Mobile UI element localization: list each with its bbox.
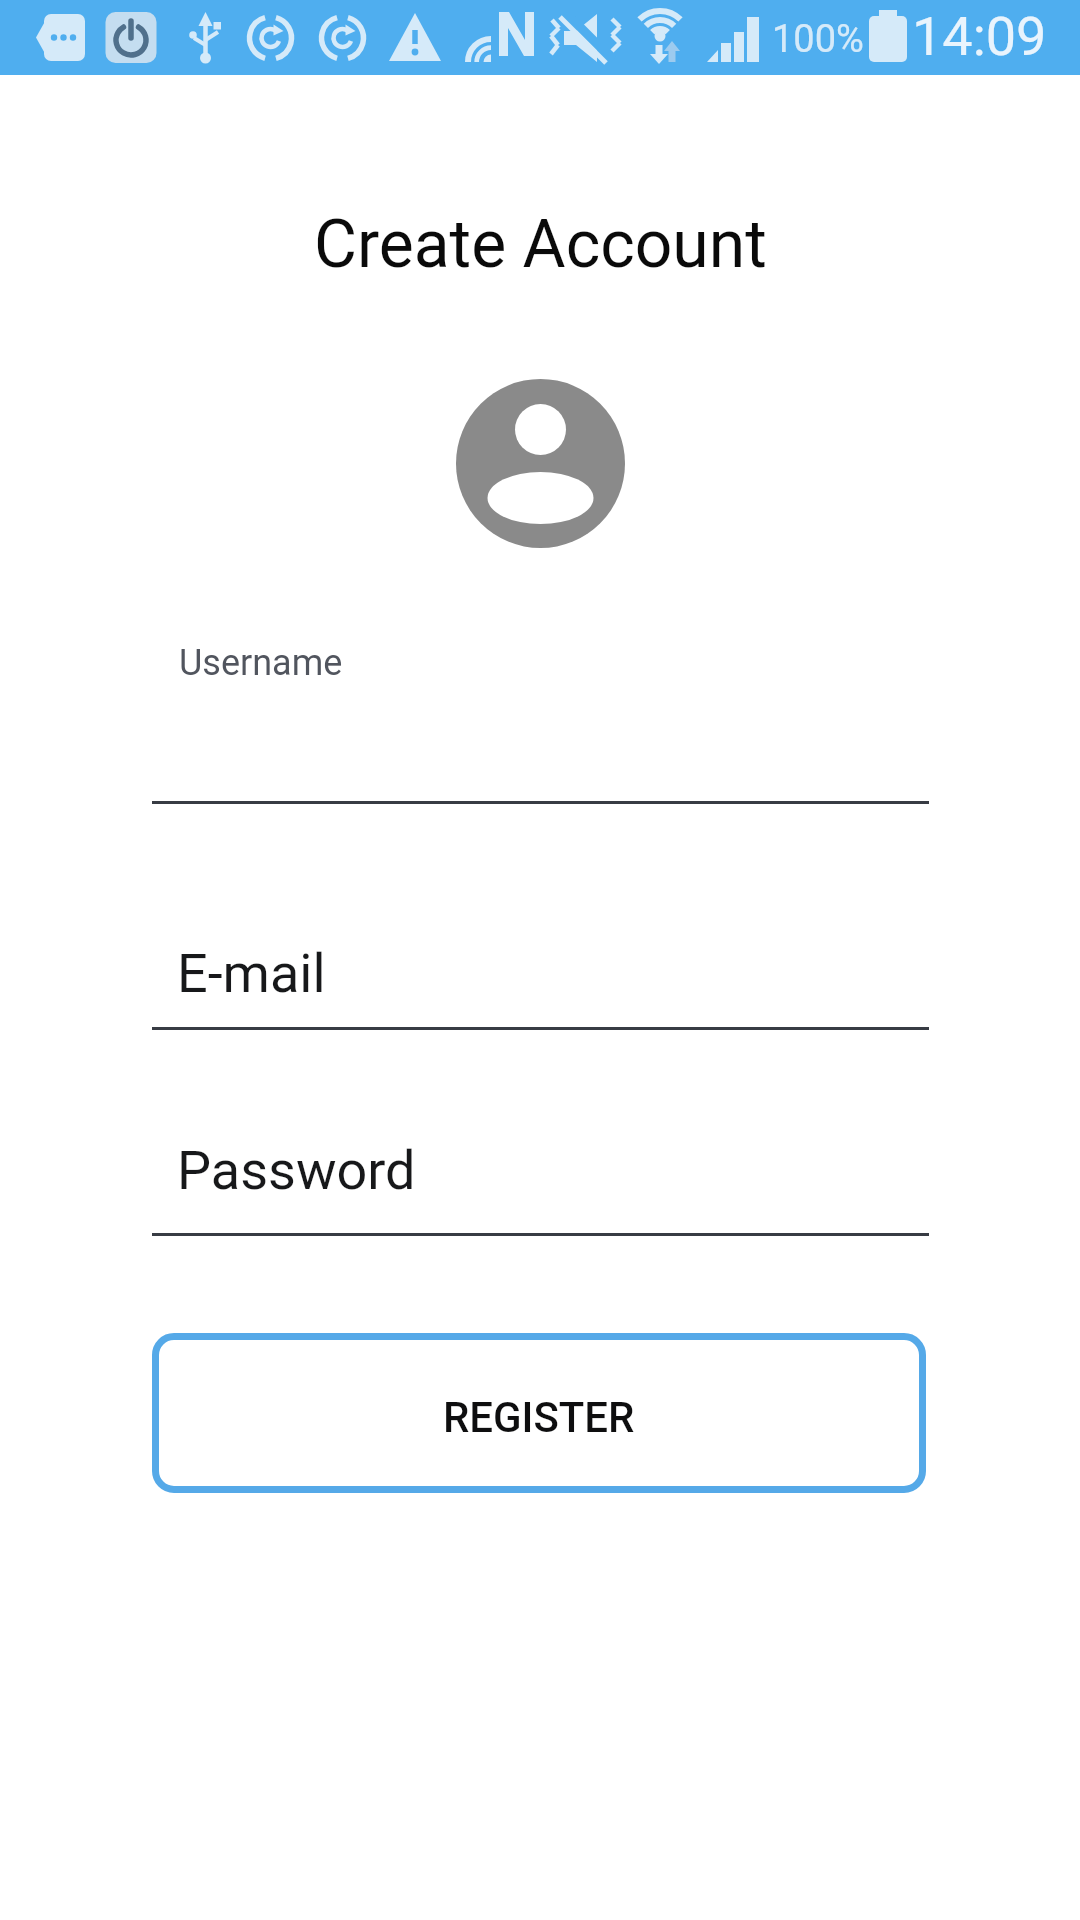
staticText: Username	[179, 642, 343, 684]
staticText: Create Account	[314, 206, 767, 283]
button[interactable]	[456, 379, 625, 548]
staticText: E-mail	[177, 942, 326, 1005]
staticText: 14:09	[912, 5, 1047, 68]
staticText: 100%	[772, 17, 864, 62]
button[interactable]: REGISTER	[152, 1333, 926, 1493]
staticText: Password	[177, 1139, 416, 1202]
button[interactable]: Password	[152, 1128, 929, 1236]
button[interactable]: E-mail	[152, 930, 929, 1030]
staticText: REGISTER	[443, 1393, 635, 1442]
button[interactable]: Username	[152, 630, 929, 804]
